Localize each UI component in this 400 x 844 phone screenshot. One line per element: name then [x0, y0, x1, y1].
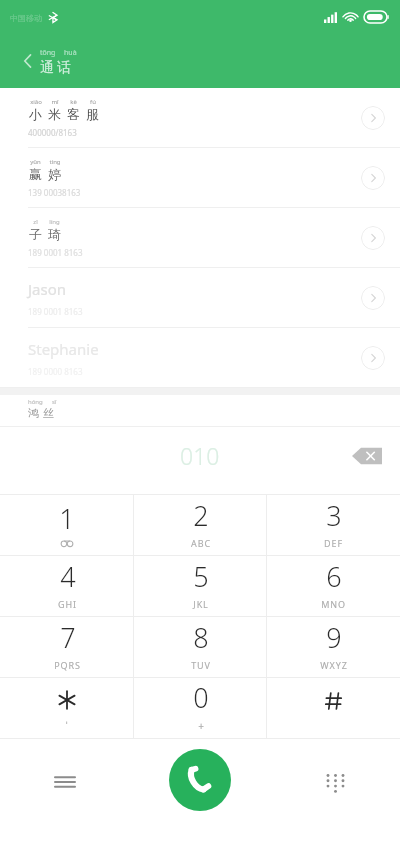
button[interactable]: 6: [267, 556, 400, 616]
staticText: 6: [326, 558, 342, 595]
staticText: 010: [180, 440, 220, 471]
button[interactable]: 1: [0, 495, 134, 555]
staticText: sī: [52, 398, 57, 406]
staticText: 0: [193, 679, 209, 716]
staticText: TUV: [191, 659, 211, 671]
staticText: 丝: [43, 406, 54, 420]
staticText: 8: [193, 619, 209, 656]
staticText: 话: [57, 59, 71, 77]
staticText: huà: [64, 48, 77, 58]
staticText: 2: [193, 497, 209, 534]
staticText: 小: [29, 106, 42, 122]
button[interactable]: hóng: [0, 395, 400, 426]
button[interactable]: Call: [169, 749, 231, 811]
button[interactable]: 5: [134, 556, 267, 616]
staticText: Stephanie: [28, 339, 99, 359]
staticText: tōng: [40, 48, 56, 58]
staticText: 琦: [48, 226, 61, 242]
staticText: kè: [70, 98, 77, 106]
staticText: hóng: [28, 398, 43, 406]
staticText: 中国移动: [10, 13, 42, 23]
button[interactable]: Back: [6, 39, 50, 83]
button[interactable]: [267, 678, 400, 738]
staticText: 通: [40, 59, 54, 77]
staticText: DEF: [324, 537, 343, 549]
staticText: mǐ: [51, 98, 59, 106]
button[interactable]: Dialpad: [313, 760, 357, 804]
staticText: 5: [193, 558, 209, 595]
staticText: 9: [326, 619, 342, 656]
staticText: 189 0001 8163: [28, 306, 83, 317]
staticText: ABC: [191, 537, 211, 549]
staticText: ˌ: [66, 712, 68, 724]
staticText: 赢: [29, 166, 42, 182]
staticText: 婷: [48, 166, 61, 182]
button[interactable]: yǔn: [0, 148, 400, 207]
staticText: 139 00038163: [28, 187, 81, 198]
staticText: xiǎo: [30, 98, 42, 106]
staticText: MNO: [321, 598, 346, 610]
staticText: +: [198, 719, 205, 733]
button[interactable]: 4: [0, 556, 134, 616]
button[interactable]: Contact details: [361, 226, 385, 250]
button[interactable]: zǐ: [0, 208, 400, 267]
staticText: 3: [326, 497, 342, 534]
button[interactable]: Contact details: [361, 346, 385, 370]
staticText: fú: [90, 98, 96, 106]
button[interactable]: 3: [267, 495, 400, 555]
staticText: WXYZ: [320, 659, 348, 671]
staticText: PQRS: [54, 659, 81, 671]
staticText: líng: [49, 218, 60, 226]
staticText: JKL: [193, 598, 209, 610]
button[interactable]: 0: [134, 678, 267, 738]
staticText: GHI: [58, 598, 77, 610]
button[interactable]: 9: [267, 617, 400, 677]
button[interactable]: 7: [0, 617, 134, 677]
staticText: Jason: [28, 279, 67, 299]
button[interactable]: ˌ: [0, 678, 134, 738]
button[interactable]: Backspace: [352, 445, 382, 467]
button[interactable]: Contact details: [361, 286, 385, 310]
button[interactable]: xiǎo: [0, 88, 400, 147]
button[interactable]: 2: [134, 495, 267, 555]
staticText: 189 0001 8163: [28, 247, 83, 258]
button[interactable]: Contact details: [361, 166, 385, 190]
button[interactable]: 8: [134, 617, 267, 677]
staticText: 鸿: [28, 406, 39, 420]
staticText: 子: [29, 226, 42, 242]
staticText: 服: [86, 106, 99, 122]
staticText: 客: [67, 106, 80, 122]
button[interactable]: Contact details: [361, 106, 385, 130]
staticText: tíng: [49, 158, 61, 166]
staticText: 1: [59, 500, 75, 537]
button[interactable]: Menu: [43, 760, 87, 804]
staticText: yǔn: [30, 158, 41, 166]
staticText: zǐ: [33, 218, 38, 226]
staticText: 米: [48, 106, 61, 122]
staticText: 400000/8163: [28, 127, 77, 138]
staticText: 7: [60, 619, 76, 656]
staticText: 189 0000 8163: [28, 366, 83, 377]
staticText: 4: [60, 558, 76, 595]
